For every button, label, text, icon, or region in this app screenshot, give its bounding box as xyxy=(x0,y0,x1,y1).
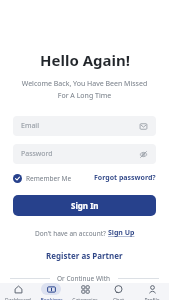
other: Email xyxy=(138,121,148,131)
staticText: Categories xyxy=(72,297,98,300)
staticText: Profile xyxy=(144,297,160,300)
staticText: Forgot password? xyxy=(94,173,156,183)
button[interactable]: Register as Partner xyxy=(46,250,123,261)
staticText: Register as Partner xyxy=(46,250,123,261)
button[interactable]: Sign Up xyxy=(108,228,135,238)
staticText: Bookings xyxy=(40,297,63,300)
staticText: Sign Up xyxy=(108,228,135,238)
staticText: Remember Me xyxy=(26,174,72,183)
button[interactable]: Password xyxy=(13,144,156,164)
staticText: Welcome Back, You Have Been Missed For A… xyxy=(12,79,157,100)
staticText: Email xyxy=(21,121,39,131)
button[interactable]: Dashboard xyxy=(2,283,34,300)
staticText: Or Continue With xyxy=(57,274,111,283)
staticText: Dashboard xyxy=(5,297,31,300)
button[interactable]: Profile xyxy=(136,283,168,300)
button[interactable]: Remember Me xyxy=(13,174,72,183)
staticText: Chat xyxy=(113,297,124,300)
button[interactable]: Sign In xyxy=(13,195,156,216)
other: Show password xyxy=(138,149,148,159)
button[interactable]: Email xyxy=(13,116,156,136)
button[interactable]: Forgot password? xyxy=(94,173,156,183)
staticText: Sign In xyxy=(71,200,99,211)
button[interactable]: Chat xyxy=(102,283,134,300)
button[interactable]: Categories xyxy=(69,283,101,300)
staticText: Hello Again! xyxy=(40,50,130,70)
button[interactable]: Bookings xyxy=(35,283,67,300)
staticText: Don't have an account? xyxy=(35,229,108,238)
staticText: Password xyxy=(21,149,53,159)
